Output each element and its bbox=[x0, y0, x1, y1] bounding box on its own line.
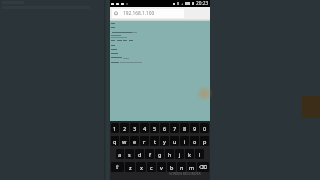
staticText: 6 bbox=[163, 125, 167, 132]
staticText: s bbox=[128, 151, 131, 158]
button[interactable]: n bbox=[177, 162, 186, 172]
button[interactable]: f bbox=[145, 149, 154, 159]
staticText: 2 bbox=[123, 125, 127, 132]
button[interactable]: z bbox=[125, 162, 135, 172]
staticText: ⇧ bbox=[115, 164, 120, 170]
staticText: 9 bbox=[193, 125, 197, 132]
button[interactable]: q bbox=[111, 136, 119, 146]
button[interactable]: 2 bbox=[120, 123, 129, 133]
staticText: n bbox=[180, 164, 184, 171]
button[interactable]: i bbox=[180, 136, 189, 146]
button[interactable]: a bbox=[116, 149, 124, 159]
staticText: 0 bbox=[203, 125, 207, 132]
button[interactable]: r bbox=[140, 136, 149, 146]
button[interactable]: 5 bbox=[150, 123, 159, 133]
button[interactable] bbox=[112, 9, 184, 18]
button[interactable]: Shift bbox=[111, 162, 124, 172]
staticText: 192.168.1.100 bbox=[123, 10, 155, 17]
staticText: l bbox=[199, 151, 201, 158]
staticText: z bbox=[129, 164, 132, 171]
staticText: u bbox=[173, 138, 177, 145]
button[interactable]: u bbox=[170, 136, 179, 146]
button[interactable]: h bbox=[165, 149, 174, 159]
button[interactable]: Backspace bbox=[197, 162, 209, 172]
staticText: i bbox=[184, 138, 186, 145]
staticText: g bbox=[158, 151, 162, 158]
staticText: v bbox=[160, 164, 163, 171]
button[interactable]: 8 bbox=[180, 123, 189, 133]
staticText: q bbox=[113, 138, 117, 145]
button[interactable]: 4 bbox=[140, 123, 149, 133]
button[interactable]: 1 bbox=[111, 123, 119, 133]
staticText: ⌫ bbox=[199, 164, 207, 170]
button[interactable]: x bbox=[136, 162, 146, 172]
button[interactable]: 3 bbox=[130, 123, 139, 133]
button[interactable]: w bbox=[120, 136, 129, 146]
staticText: e bbox=[133, 138, 137, 145]
staticText: f bbox=[149, 151, 151, 158]
staticText: o bbox=[193, 138, 197, 145]
button[interactable]: t bbox=[150, 136, 159, 146]
button[interactable]: o bbox=[190, 136, 199, 146]
button[interactable]: p bbox=[200, 136, 209, 146]
staticText: t bbox=[154, 138, 156, 145]
button[interactable]: Home bbox=[114, 11, 118, 15]
staticText: r bbox=[143, 138, 146, 145]
button[interactable]: v bbox=[157, 162, 166, 172]
button[interactable]: 6 bbox=[160, 123, 169, 133]
staticText: a bbox=[118, 151, 122, 158]
button[interactable]: 9 bbox=[190, 123, 199, 133]
button[interactable]: 7 bbox=[170, 123, 179, 133]
staticText: w bbox=[122, 138, 127, 145]
staticText: d bbox=[138, 151, 142, 158]
button[interactable]: m bbox=[187, 162, 196, 172]
button[interactable]: l bbox=[195, 149, 204, 159]
staticText: h bbox=[168, 151, 172, 158]
staticText: p bbox=[203, 138, 207, 145]
staticText: y bbox=[163, 138, 166, 145]
staticText: x bbox=[140, 164, 143, 171]
staticText: 20:23 bbox=[196, 0, 209, 7]
staticText: k bbox=[188, 151, 191, 158]
staticText: 5 bbox=[153, 125, 157, 132]
staticText: 8 bbox=[183, 125, 187, 132]
button[interactable]: j bbox=[175, 149, 184, 159]
staticText: 3 bbox=[133, 125, 137, 132]
button[interactable]: g bbox=[155, 149, 164, 159]
staticText: 7 bbox=[173, 125, 177, 132]
button[interactable]: k bbox=[185, 149, 194, 159]
staticText: c bbox=[150, 164, 153, 171]
button[interactable]: y bbox=[160, 136, 169, 146]
button[interactable]: d bbox=[135, 149, 144, 159]
button[interactable]: s bbox=[125, 149, 134, 159]
staticText: m bbox=[189, 164, 195, 171]
button[interactable]: 0 bbox=[200, 123, 209, 133]
staticText: 4 bbox=[143, 125, 147, 132]
staticText: 1 bbox=[113, 125, 117, 132]
button[interactable]: b bbox=[167, 162, 176, 172]
staticText: SCREEN RECORDER bbox=[169, 171, 201, 176]
button[interactable]: e bbox=[130, 136, 139, 146]
staticText: b bbox=[170, 164, 174, 171]
button[interactable]: c bbox=[147, 162, 156, 172]
staticText: j bbox=[179, 151, 181, 158]
